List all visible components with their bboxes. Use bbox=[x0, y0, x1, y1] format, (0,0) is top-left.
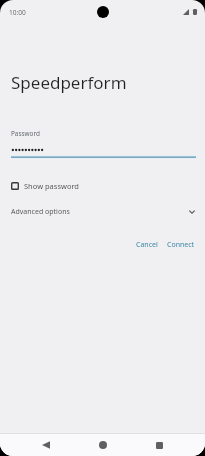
button[interactable]: Show password bbox=[8, 177, 82, 195]
staticText: Show password bbox=[24, 181, 79, 191]
staticText: Advanced options bbox=[11, 207, 70, 217]
staticText: Cancel bbox=[136, 240, 158, 250]
button[interactable]: Connect bbox=[162, 236, 200, 254]
staticText: 10:00 bbox=[9, 8, 26, 17]
staticText: Connect bbox=[167, 240, 195, 250]
button[interactable]: Advanced options bbox=[0, 204, 205, 220]
button[interactable]: Home bbox=[89, 434, 117, 456]
button[interactable]: Back bbox=[32, 434, 60, 456]
button[interactable]: Cancel bbox=[131, 236, 163, 254]
button[interactable]: Recent apps bbox=[145, 434, 173, 456]
staticText: Password bbox=[11, 129, 40, 138]
staticText: Speedperform bbox=[11, 71, 127, 94]
